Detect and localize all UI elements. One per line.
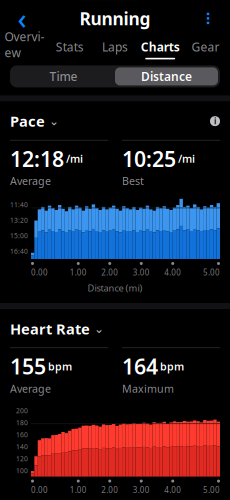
staticText: /mi	[178, 152, 195, 166]
staticText: Charts	[141, 39, 180, 55]
staticText: 10:25	[122, 144, 176, 173]
button[interactable]: Back	[8, 5, 36, 31]
staticText: Maximum	[122, 381, 174, 396]
staticText: Laps	[102, 39, 128, 55]
staticText: Heart Rate	[10, 319, 90, 338]
staticText: /mi	[66, 152, 83, 166]
staticText: 1.00	[70, 267, 87, 278]
staticText: Best	[122, 174, 144, 188]
staticText: 180	[16, 418, 28, 427]
staticText: 13:20	[10, 216, 28, 225]
staticText: 12:18	[10, 144, 64, 173]
button[interactable]: Distance	[115, 67, 218, 85]
staticText: Gear	[191, 39, 219, 55]
staticText: 2.00	[101, 485, 118, 495]
staticText: 164	[122, 352, 158, 380]
staticText: 0.00	[31, 267, 48, 278]
staticText: bpm	[48, 359, 72, 373]
staticText: ⌄	[49, 114, 59, 128]
staticText: 4.00	[164, 485, 181, 495]
button[interactable]: Information about Pace	[210, 116, 220, 126]
staticText: Stats	[56, 39, 84, 55]
staticText: ‹	[17, 0, 26, 37]
button[interactable]: Time	[12, 67, 115, 85]
button[interactable]: Laps	[92, 31, 138, 59]
staticText: Average	[10, 174, 51, 188]
staticText: 15:00	[10, 231, 28, 240]
staticText: 0.00	[31, 485, 48, 495]
button[interactable]: Gear	[183, 31, 228, 59]
staticText: 100	[16, 466, 28, 475]
staticText: 5.00	[203, 485, 220, 495]
staticText: 11:40	[10, 200, 28, 209]
staticText: 4.00	[164, 267, 181, 278]
staticText: Overview	[5, 29, 45, 61]
staticText: 1.00	[70, 485, 87, 495]
staticText: 3.00	[133, 267, 150, 278]
staticText: i	[214, 116, 216, 126]
staticText: 3.00	[133, 485, 150, 495]
staticText: Distance	[141, 68, 192, 84]
staticText: Average	[10, 381, 51, 396]
staticText: 16:40	[10, 247, 28, 256]
staticText: Running	[79, 7, 150, 30]
button[interactable]: Pace	[10, 111, 59, 131]
button[interactable]: More options	[194, 5, 222, 31]
button[interactable]: Overview	[2, 31, 47, 59]
staticText: 2.00	[101, 267, 118, 278]
staticText: ⌄	[94, 322, 104, 335]
button[interactable]: Stats	[47, 31, 92, 59]
button[interactable]: Heart Rate	[10, 319, 104, 338]
staticText: bpm	[160, 359, 184, 373]
staticText: Distance (mi)	[87, 282, 142, 294]
staticText: 155	[10, 352, 46, 380]
button[interactable]: Charts	[138, 31, 183, 59]
staticText: Pace	[10, 111, 45, 131]
staticText: 160	[16, 430, 28, 439]
staticText: 140	[16, 442, 28, 451]
staticText: 5.00	[203, 267, 220, 278]
staticText: Time	[49, 68, 77, 84]
staticText: 200	[16, 406, 28, 415]
staticText: 120	[16, 454, 28, 463]
